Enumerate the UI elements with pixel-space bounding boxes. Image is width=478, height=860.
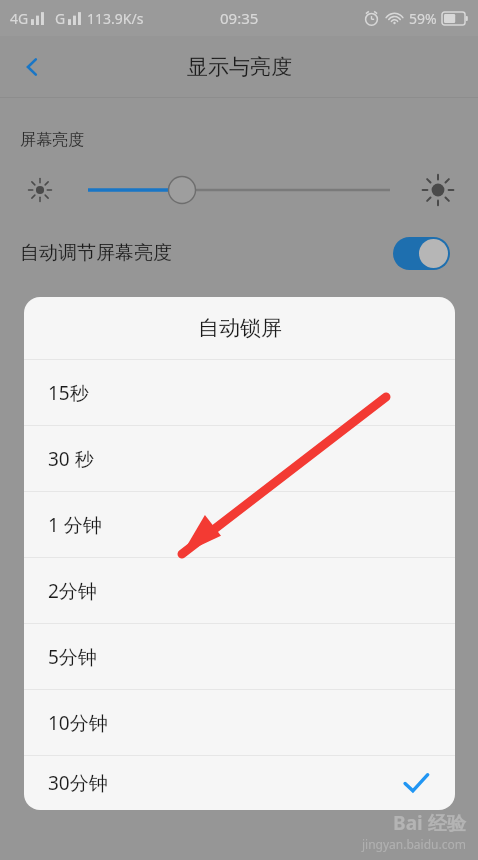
button[interactable]: 10分钟 [24, 690, 455, 755]
staticText: 30 秒 [48, 446, 94, 472]
staticText: 30分钟 [48, 770, 108, 796]
staticText: G [55, 9, 66, 28]
staticText: 15秒 [48, 380, 89, 406]
staticText: 2分钟 [48, 578, 97, 604]
staticText: 自动调节屏幕亮度 [20, 241, 172, 265]
staticText: 自动锁屏 [198, 315, 282, 341]
staticText: 10分钟 [48, 710, 108, 736]
staticText: 113.9K/s [87, 9, 144, 28]
staticText: 09:35 [220, 8, 259, 28]
button[interactable]: Auto brightness on [393, 237, 450, 270]
button[interactable]: 30 秒 [24, 426, 455, 491]
staticText: 4G [10, 9, 29, 28]
button[interactable]: 2分钟 [24, 558, 455, 623]
button[interactable]: 自动调节屏幕亮度 [0, 222, 478, 284]
staticText: 5分钟 [48, 644, 97, 670]
button[interactable]: 1 分钟 [24, 492, 455, 557]
button[interactable]: Back [8, 43, 56, 91]
button[interactable]: 15秒 [24, 360, 455, 425]
staticText: 显示与亮度 [187, 54, 292, 80]
button[interactable] [0, 173, 478, 207]
button[interactable]: 30分钟 [24, 756, 455, 810]
staticText: jingyan.baidu.com [362, 836, 466, 852]
staticText: 屏幕亮度 [20, 130, 84, 150]
staticText: 59% [409, 9, 437, 28]
staticText: Bai 经验 [393, 810, 466, 836]
button[interactable]: 5分钟 [24, 624, 455, 689]
staticText: 1 分钟 [48, 512, 102, 538]
